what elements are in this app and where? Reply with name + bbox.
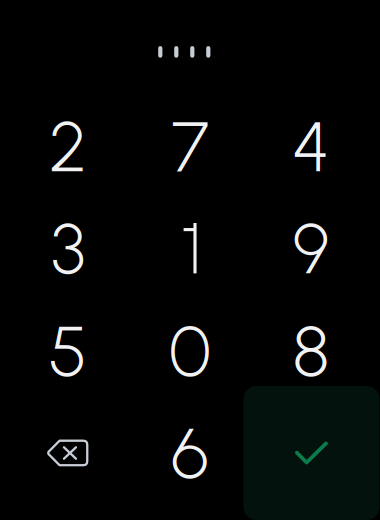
staticText: 5 (48, 309, 87, 393)
button[interactable]: 0 (129, 300, 251, 402)
staticText: 7 (171, 104, 208, 189)
staticText: 9 (292, 206, 329, 291)
button[interactable]: Delete (7, 386, 129, 519)
button[interactable]: 5 (7, 300, 129, 402)
staticText: 6 (171, 411, 209, 495)
button[interactable]: 7 (129, 95, 251, 197)
button[interactable]: 3 (7, 197, 129, 299)
button[interactable]: 6 (129, 386, 251, 519)
button[interactable]: 2 (7, 95, 129, 197)
staticText: 4 (292, 104, 330, 189)
button[interactable] (129, 197, 251, 299)
staticText: 2 (49, 104, 87, 189)
button[interactable]: Confirm (243, 386, 379, 520)
button[interactable]: 9 (250, 197, 372, 299)
button[interactable]: 4 (250, 95, 372, 197)
staticText: 3 (51, 206, 85, 291)
button[interactable]: 8 (250, 300, 372, 402)
staticText: 0 (169, 309, 211, 393)
staticText: 8 (292, 309, 329, 393)
